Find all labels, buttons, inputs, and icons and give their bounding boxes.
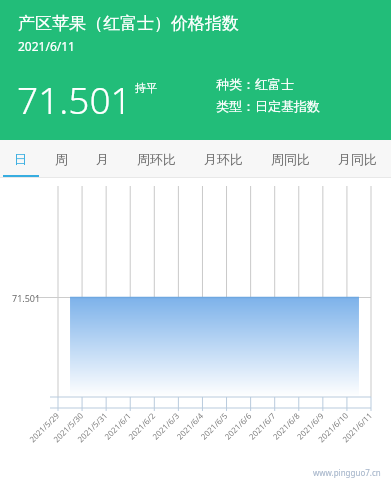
staticText: 71.501 bbox=[17, 74, 132, 124]
staticText: 周同比 bbox=[271, 151, 310, 167]
staticText: 月同比 bbox=[338, 151, 377, 167]
button[interactable]: 周同比 bbox=[257, 140, 324, 178]
button[interactable]: 周环比 bbox=[123, 140, 190, 178]
staticText: 周环比 bbox=[137, 151, 176, 167]
button[interactable]: 月环比 bbox=[190, 140, 257, 178]
staticText: 产区苹果（红富士）价格指数 bbox=[18, 13, 239, 34]
staticText: 日 bbox=[14, 151, 27, 167]
staticText: 2021/6/11 bbox=[18, 38, 75, 54]
button[interactable]: 月同比 bbox=[324, 140, 391, 178]
staticText: 持平 bbox=[135, 81, 157, 95]
button[interactable]: 日 bbox=[0, 140, 41, 178]
staticText: 月环比 bbox=[204, 151, 243, 167]
staticText: 周 bbox=[55, 151, 68, 167]
staticText: 种类：红富士 bbox=[216, 76, 294, 92]
button[interactable]: 月 bbox=[82, 140, 123, 178]
staticText: 类型：日定基指数 bbox=[216, 98, 320, 114]
button[interactable]: 周 bbox=[41, 140, 82, 178]
staticText: 月 bbox=[96, 151, 109, 167]
